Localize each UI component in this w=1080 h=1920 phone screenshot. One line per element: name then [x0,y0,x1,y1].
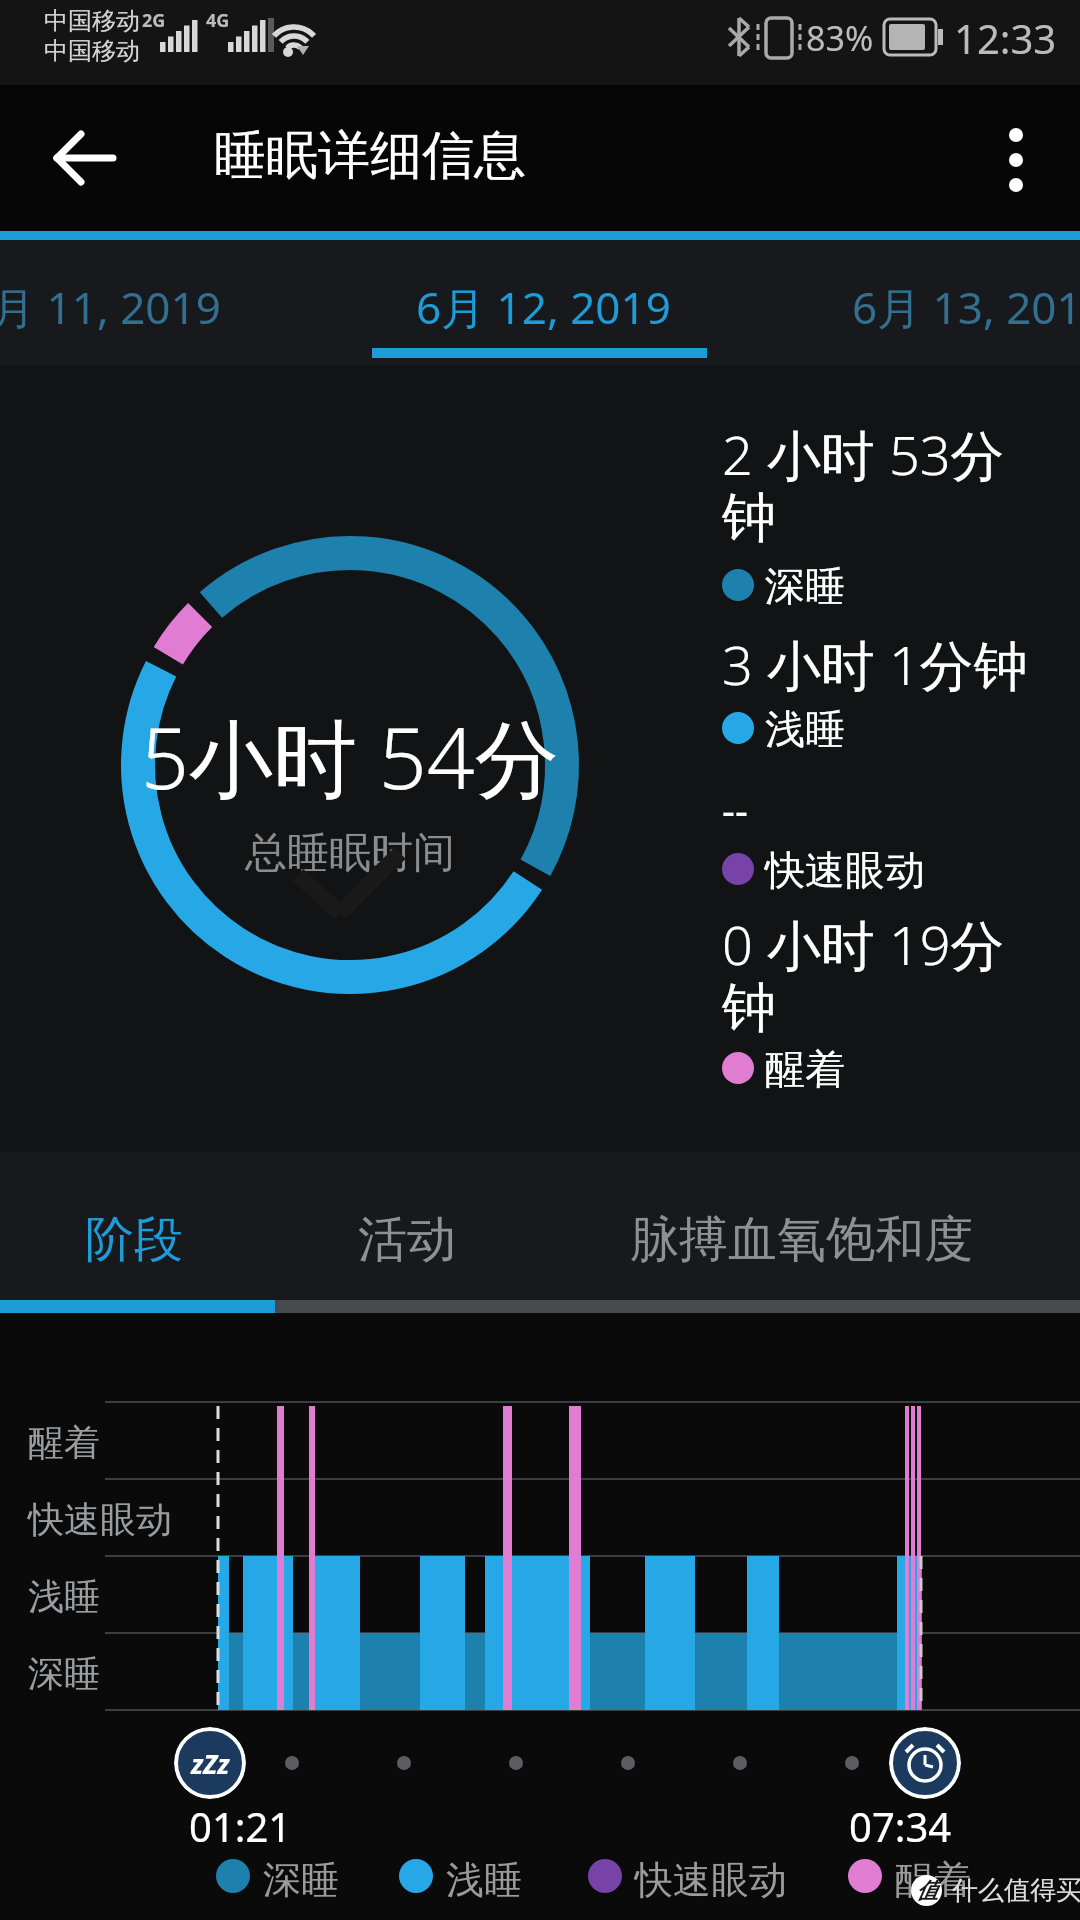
staticText: 07:34 [849,1799,952,1853]
button[interactable]: zZz [174,1727,246,1799]
staticText: 6月 13, 2019 [852,277,1080,337]
staticText: 阶段 [85,1209,183,1271]
staticText: 钟 [722,484,776,552]
staticText: 什么值得买 [952,1874,1080,1907]
staticText: 总睡眠时间 [245,827,455,880]
staticText: 钟 [722,974,776,1042]
staticText: 快速眼动 [765,845,925,895]
button[interactable] [889,1727,961,1799]
staticText: 4G [206,8,230,33]
staticText: 醒着 [895,1856,971,1904]
button[interactable] [40,122,130,194]
staticText: 活动 [358,1209,456,1271]
staticText: 中国移动 [44,36,140,66]
staticText: zZz [191,1746,230,1781]
staticText: 浅睡 [28,1574,100,1619]
button[interactable] [340,240,740,365]
staticText: 睡眠详细信息 [214,123,526,189]
staticText: 快速眼动 [635,1856,787,1904]
staticText: 快速眼动 [28,1497,172,1542]
staticText: 脉搏血氧饱和度 [630,1209,973,1271]
staticText: 浅睡 [446,1856,522,1904]
button[interactable] [975,115,1055,205]
staticText: 醒着 [28,1420,100,1465]
staticText: 2 小时 53分 [722,417,1005,491]
staticText: 5小时 54分 [141,699,559,814]
staticText: 01:21 [189,1799,292,1853]
staticText: 6月 12, 2019 [416,277,671,337]
staticText: 6月 11, 2019 [0,277,221,337]
staticText: 0 小时 19分 [722,907,1005,981]
staticText: 83% [806,15,874,61]
staticText: 值 [916,1877,938,1905]
staticText: 浅睡 [765,704,845,754]
staticText: 深睡 [28,1651,100,1696]
button[interactable] [545,1152,1080,1300]
staticText: 深睡 [765,561,845,611]
staticText: 深睡 [263,1856,339,1904]
staticText: 醒着 [765,1044,845,1094]
button[interactable] [0,1152,275,1300]
button[interactable] [275,1152,545,1300]
staticText: 2G [142,8,166,33]
staticText: 12:33 [954,11,1057,65]
staticText: 中国移动 [44,6,140,36]
staticText: -- [722,782,748,836]
staticText: 3 小时 1分钟 [722,627,1028,701]
